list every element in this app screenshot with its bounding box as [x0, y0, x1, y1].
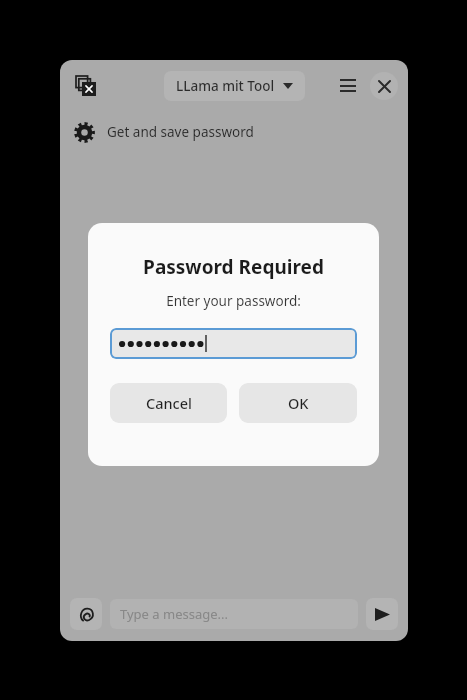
button[interactable]: Cancel [110, 383, 227, 423]
button[interactable]: OK [239, 383, 357, 423]
staticText: Password Required [143, 254, 324, 280]
staticText: Cancel [146, 393, 192, 413]
staticText: OK [288, 393, 309, 413]
button[interactable]: Close all chats [70, 70, 102, 102]
button[interactable]: Attach file [70, 598, 102, 630]
staticText: Type a message... [120, 605, 228, 623]
staticText: Get and save password [107, 123, 254, 141]
button[interactable] [110, 328, 357, 359]
button[interactable]: Menu [332, 70, 364, 102]
staticText: LLama mit Tool [176, 77, 275, 95]
button[interactable]: Close [370, 72, 398, 100]
button[interactable]: Type a message... [110, 599, 358, 629]
button[interactable]: Get and save password [60, 112, 408, 152]
button[interactable]: LLama mit Tool [164, 71, 305, 101]
button[interactable]: Send [366, 598, 398, 630]
staticText: Enter your password: [166, 292, 301, 310]
